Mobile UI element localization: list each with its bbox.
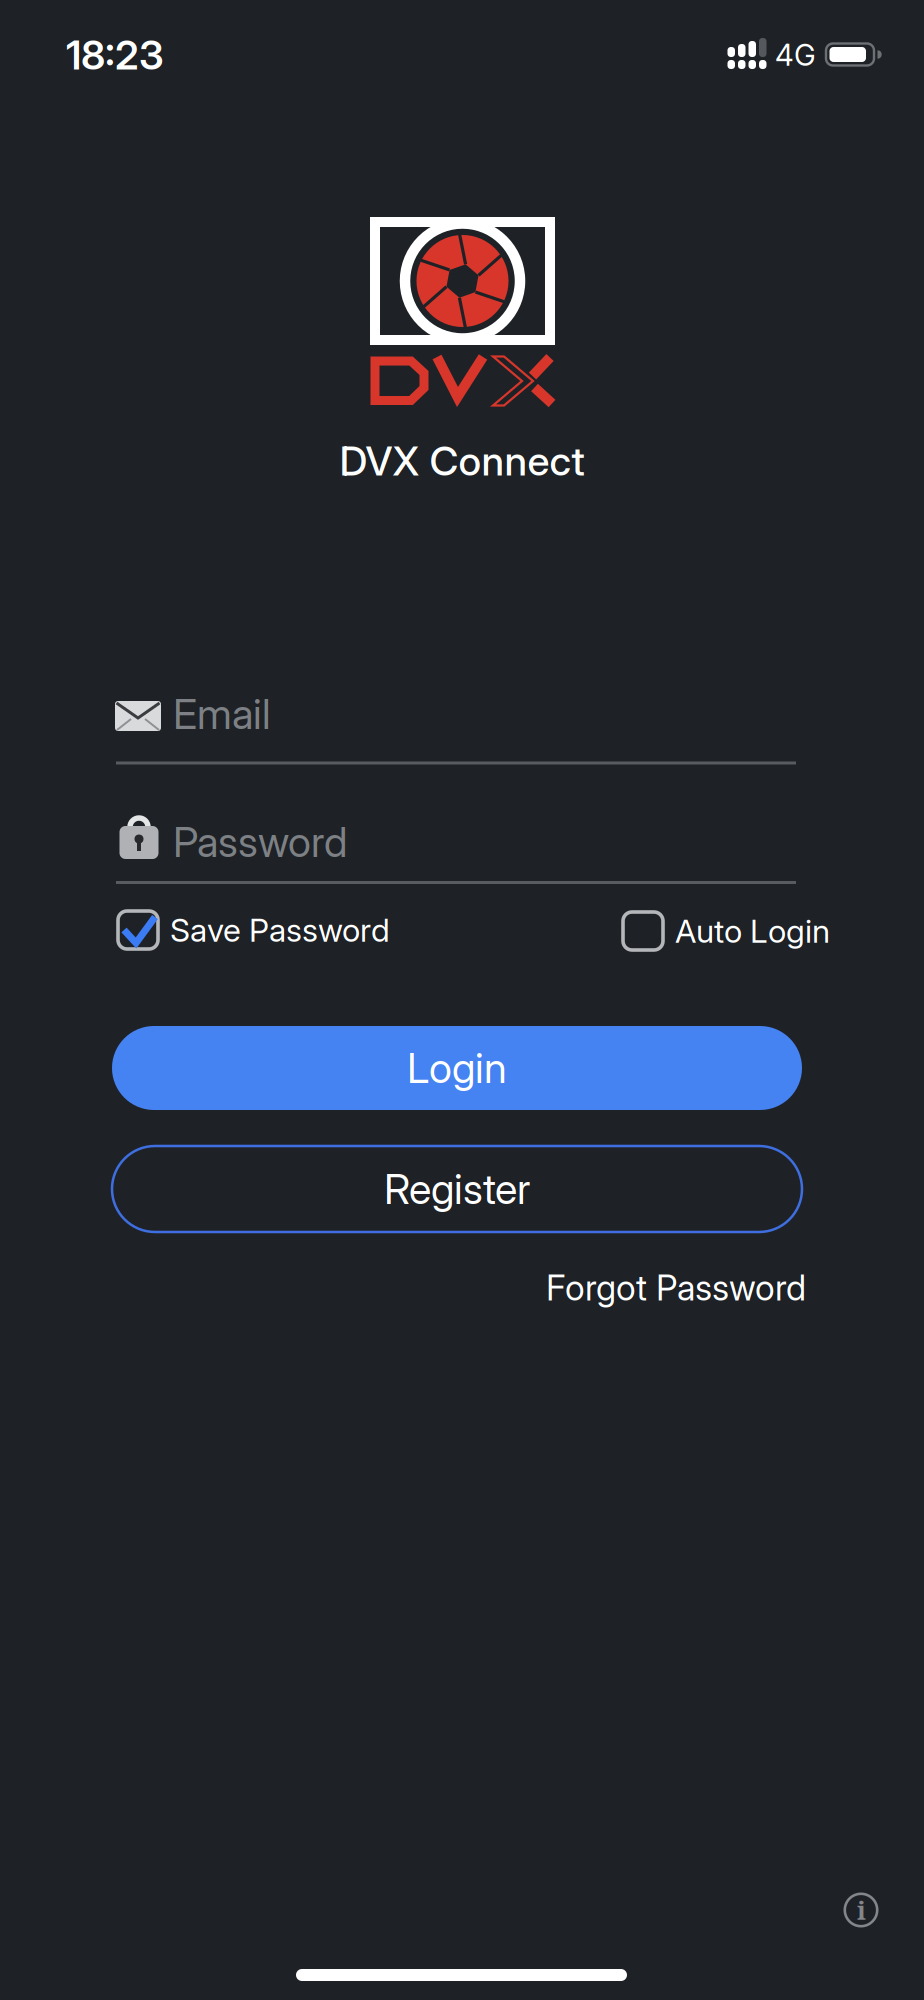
staticText: Email [173,689,271,739]
staticText: i [857,1893,866,1927]
button[interactable]: i [843,1892,879,1928]
button[interactable]: Auto Login [621,910,921,954]
staticText: 18:23 [66,31,164,79]
staticText: Forgot Password [546,1267,806,1309]
staticText: Save Password [170,911,390,949]
button[interactable]: Register [112,1146,802,1232]
staticText: Password [173,817,347,867]
staticText: 4G [775,37,816,73]
button[interactable]: Forgot Password [376,1266,806,1310]
button[interactable]: Login [112,1026,802,1110]
staticText: Register [384,1164,530,1214]
button[interactable]: Save Password [116,909,506,953]
staticText: Auto Login [675,912,830,950]
staticText: Login [407,1043,507,1093]
staticText: DVX Connect [339,437,584,485]
